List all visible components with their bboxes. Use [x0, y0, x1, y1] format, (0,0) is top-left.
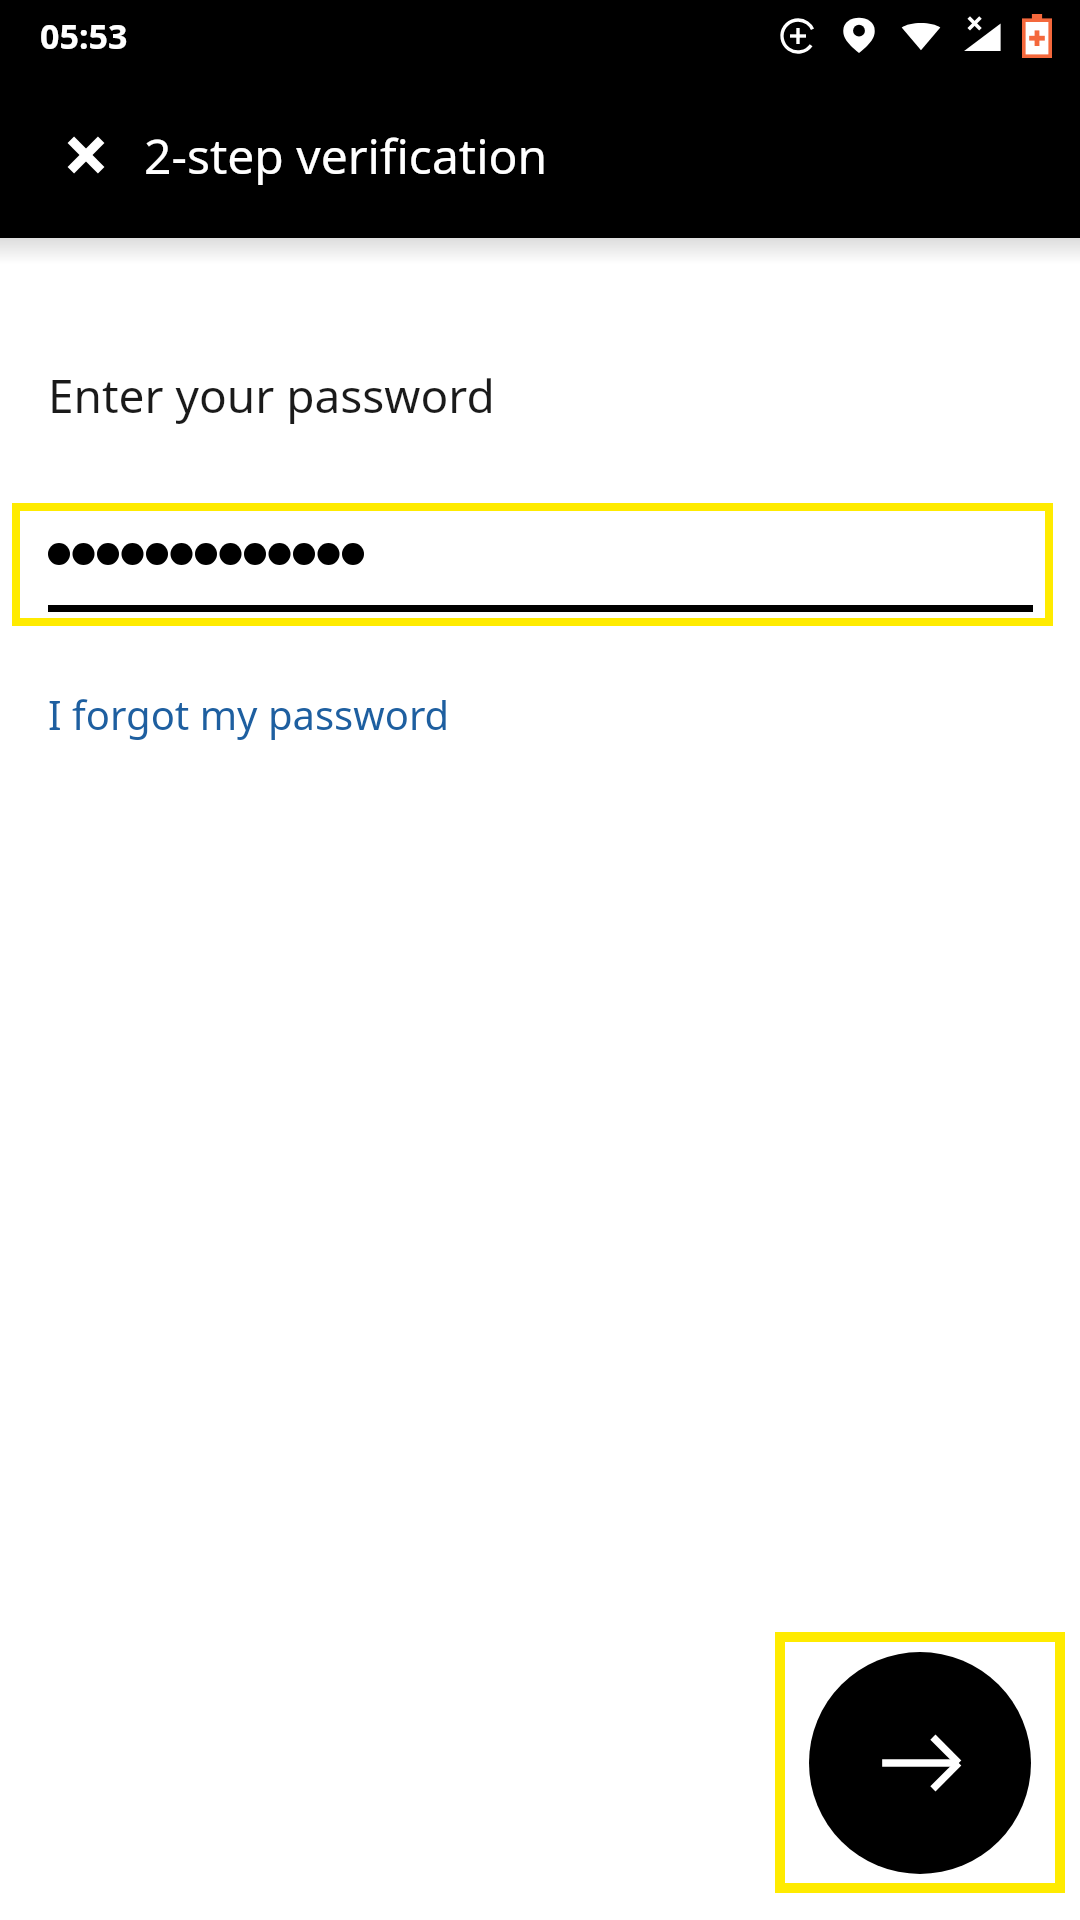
staticText: I forgot my password	[48, 687, 450, 741]
button[interactable]: Next	[809, 1652, 1031, 1874]
button[interactable]: Close	[40, 109, 132, 201]
staticText: 05:53	[40, 13, 128, 59]
button[interactable]: I forgot my password	[40, 679, 458, 749]
button[interactable]	[20, 511, 1045, 618]
staticText: Enter your password	[48, 364, 495, 427]
staticText: 2-step verification	[144, 123, 548, 188]
